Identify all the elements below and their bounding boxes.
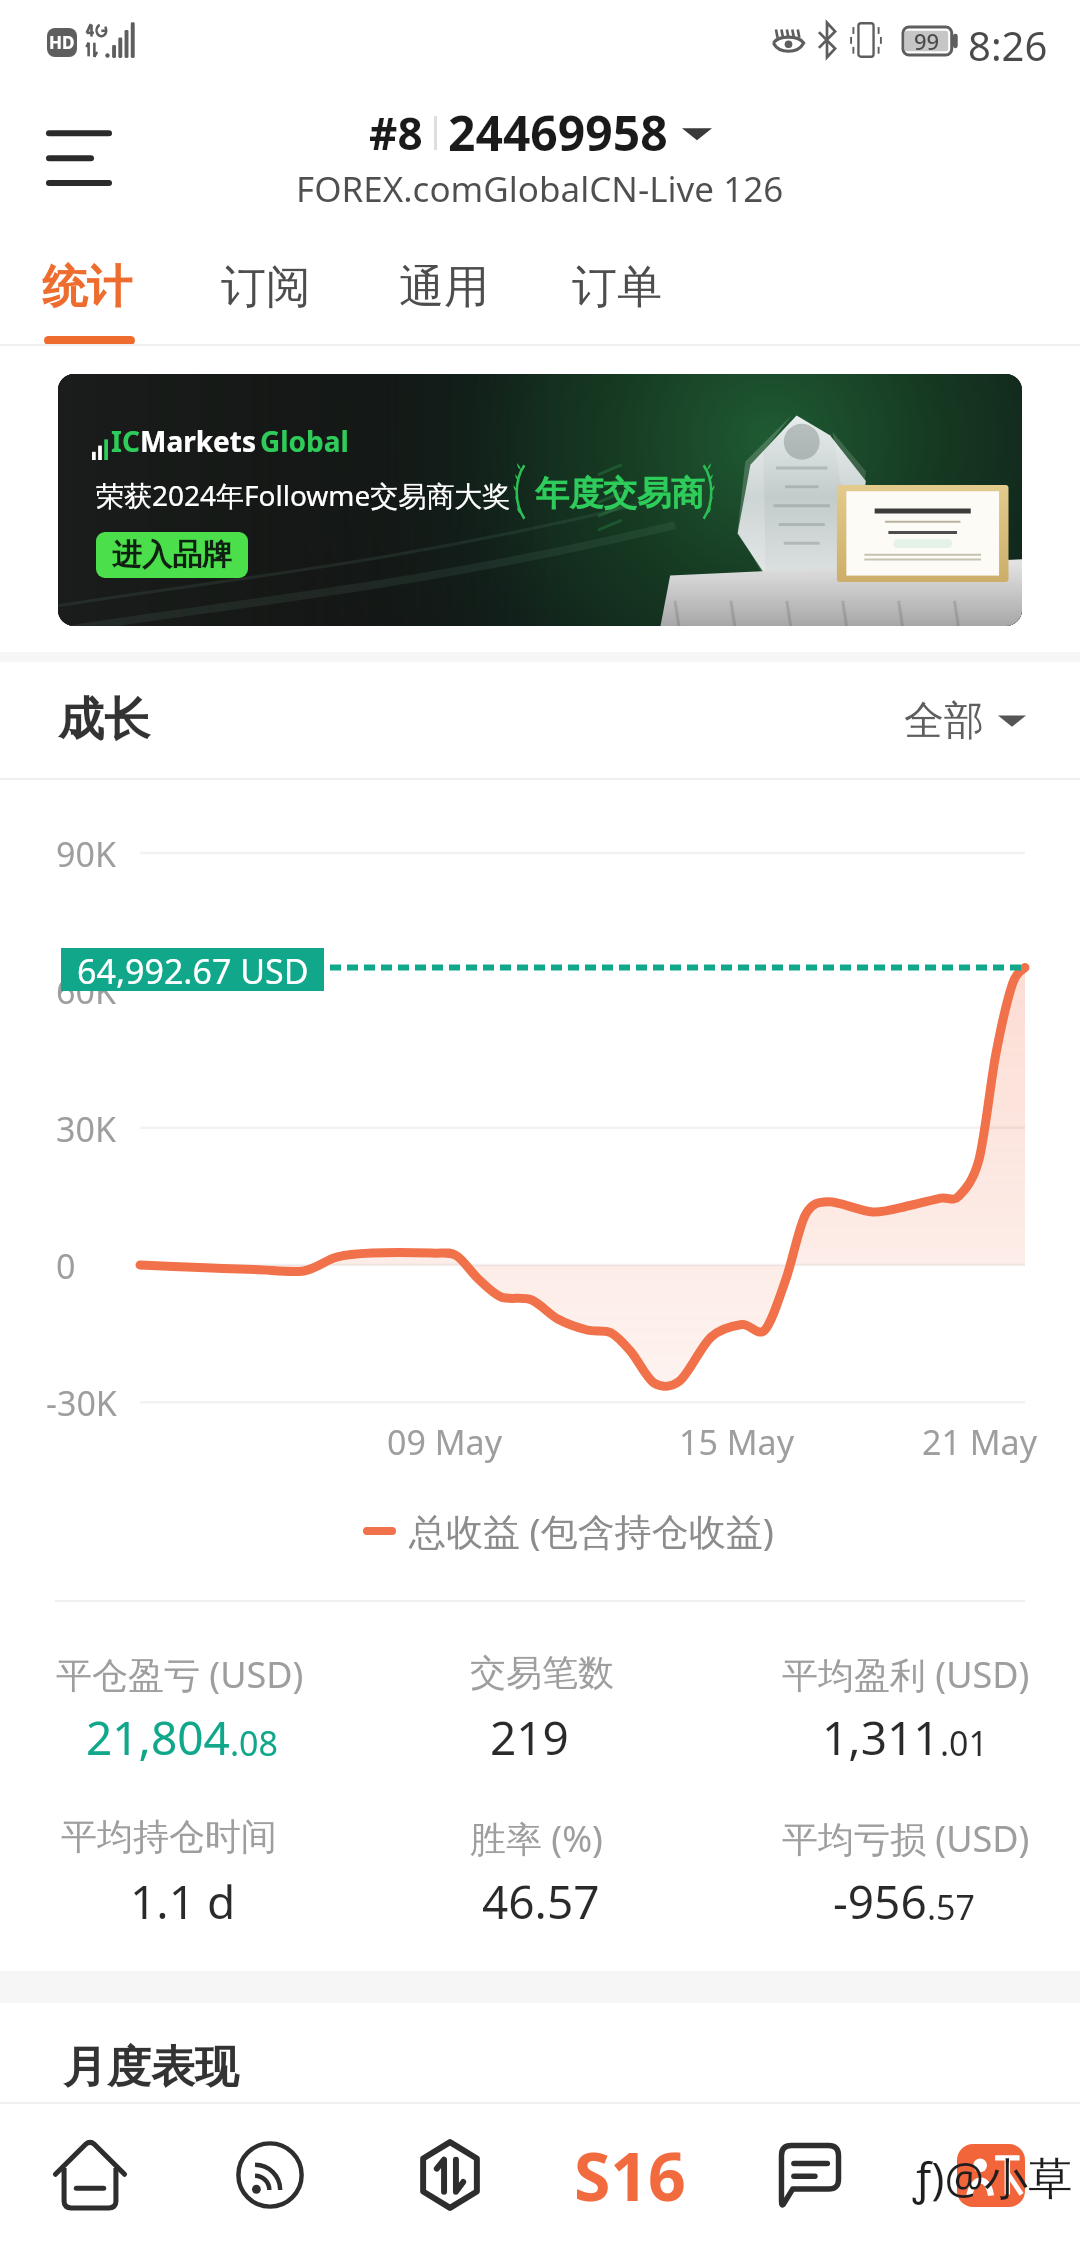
staticText: 21,804 <box>86 1706 230 1769</box>
staticText: .01 <box>940 1720 989 1766</box>
staticText: 平均持仓时间 <box>61 1814 277 1859</box>
staticText: 09 May <box>387 1419 502 1465</box>
staticText: IC <box>111 422 140 460</box>
staticText: ƒ)@小草 <box>913 2147 1072 2207</box>
button[interactable]: IC <box>58 374 1022 626</box>
staticText: 荣获2024年Followme交易商大奖 <box>96 476 511 514</box>
staticText: HD <box>49 31 75 54</box>
button[interactable]: Profile <box>900 2104 1080 2244</box>
staticText: 总收益 (包含持仓收益) <box>409 1505 774 1556</box>
staticText: 订单 <box>572 259 662 316</box>
staticText: 64,992.67 USD <box>77 948 309 991</box>
button[interactable]: 订单 <box>546 240 688 344</box>
staticText: 平仓盈亏 (USD) <box>56 1650 304 1699</box>
button[interactable]: Discover <box>180 2104 360 2244</box>
staticText: 219 <box>490 1706 569 1769</box>
staticText: Markets <box>140 422 256 460</box>
staticText: 21 May <box>922 1419 1037 1465</box>
staticText: 年度交易商 <box>535 472 705 515</box>
button[interactable]: 进入品牌 <box>96 532 248 578</box>
staticText: 24469958 <box>448 100 668 165</box>
staticText: 46.57 <box>482 1870 600 1933</box>
staticText: Global <box>260 422 349 460</box>
staticText: 90K <box>56 831 116 877</box>
staticText: .08 <box>230 1720 279 1766</box>
staticText: 进入品牌 <box>112 536 232 574</box>
button[interactable]: 通用 <box>373 240 515 344</box>
button[interactable]: Trade <box>360 2104 540 2244</box>
staticText: 平均亏损 (USD) <box>782 1814 1030 1863</box>
staticText: 胜率 (%) <box>470 1814 603 1863</box>
staticText: -30K <box>46 1380 117 1426</box>
staticText: -956 <box>833 1870 927 1933</box>
staticText: 月度表现 <box>63 2040 239 2095</box>
staticText: #8 <box>369 103 423 163</box>
staticText: 60K <box>56 968 116 1014</box>
staticText: 30K <box>56 1106 116 1152</box>
button[interactable]: 统计 <box>16 240 158 344</box>
staticText: .57 <box>927 1884 976 1930</box>
button[interactable]: S16 <box>540 2104 720 2244</box>
staticText: 1,311 <box>822 1706 940 1769</box>
staticText: 订阅 <box>221 259 311 316</box>
staticText: 平均盈利 (USD) <box>782 1650 1030 1699</box>
button[interactable]: 全部 <box>896 687 1034 753</box>
staticText: 0 <box>56 1243 76 1289</box>
staticText: 全部 <box>904 695 984 745</box>
staticText: 统计 <box>42 259 132 316</box>
staticText: 交易笔数 <box>470 1650 614 1695</box>
button[interactable]: Menu <box>29 111 129 201</box>
button[interactable]: Home <box>0 2104 180 2244</box>
button[interactable]: Messages <box>720 2104 900 2244</box>
staticText: 1.1 d <box>130 1870 236 1933</box>
staticText: S16 <box>574 2130 686 2220</box>
staticText: FOREX.comGlobalCN-Live 126 <box>296 165 784 213</box>
staticText: 8:26 <box>968 18 1048 72</box>
button[interactable]: 订阅 <box>195 240 337 344</box>
staticText: 通用 <box>399 259 489 316</box>
staticText: 15 May <box>679 1419 794 1465</box>
staticText: 成长 <box>58 691 150 749</box>
staticText: 99 <box>914 26 940 56</box>
